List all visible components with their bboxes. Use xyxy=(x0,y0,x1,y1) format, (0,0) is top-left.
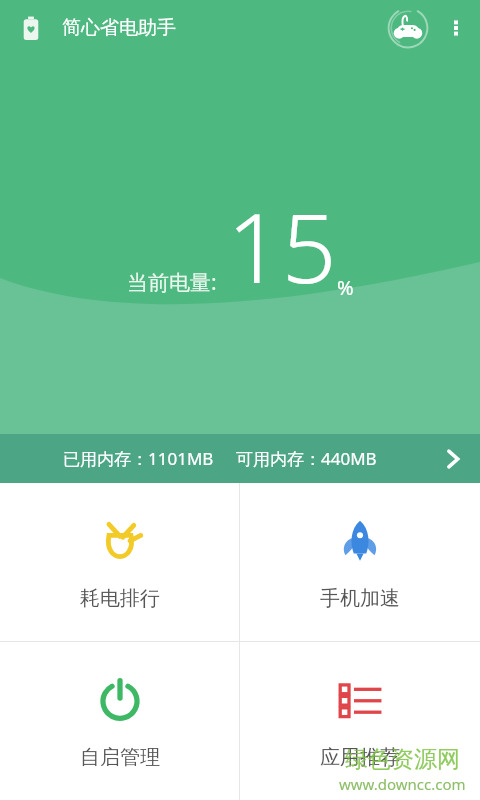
button[interactable]: Games xyxy=(384,4,432,52)
button[interactable]: 应用推荐 xyxy=(240,642,480,800)
button[interactable]: 自启管理 xyxy=(0,642,239,800)
staticText: 绿色资源网 xyxy=(345,745,460,774)
other: App icon xyxy=(18,15,44,41)
button[interactable]: More options xyxy=(432,4,480,52)
staticText: www.downcc.com xyxy=(339,774,466,794)
staticText: 15 xyxy=(227,180,337,311)
staticText: 应用推荐 xyxy=(320,745,400,770)
button[interactable]: 耗电排行 xyxy=(0,483,239,641)
staticText: 可用内存：440MB xyxy=(236,447,377,470)
staticText: 耗电排行 xyxy=(80,586,160,611)
staticText: 自启管理 xyxy=(80,745,160,770)
staticText: % xyxy=(337,274,354,301)
staticText: 当前电量: xyxy=(127,268,217,297)
button[interactable]: 已用内存：1101MB xyxy=(0,434,480,483)
staticText: 已用内存：1101MB xyxy=(63,447,214,470)
staticText: 手机加速 xyxy=(320,586,400,611)
staticText: 简心省电助手 xyxy=(62,16,176,40)
button[interactable]: 手机加速 xyxy=(240,483,480,641)
